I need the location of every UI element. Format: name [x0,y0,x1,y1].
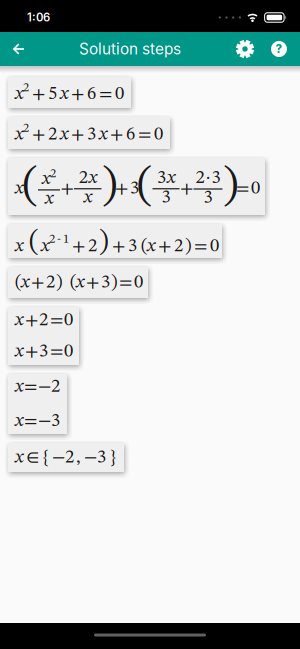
staticText: x2 [42,168,56,188]
staticText: + [180,179,193,198]
staticText: x [84,188,92,207]
button[interactable]: x2 + 5 x + 6 = 0 [8,77,131,108]
staticText: x = −3 [15,412,60,430]
staticText: x2 + 5 x + 6 = 0 [15,82,124,103]
staticText: 1:06 [27,11,50,24]
staticText: ) [223,164,238,209]
button[interactable]: Help [271,41,300,57]
staticText: x + 2 = 0 [15,311,73,329]
staticText: Solution steps [79,40,181,58]
button[interactable]: x ∈ { −2 , −3 } [8,443,124,472]
button[interactable]: Back [0,43,34,55]
button[interactable]: x [8,158,265,215]
staticText: ( [22,164,37,209]
button[interactable]: x = −2 [8,374,67,434]
button[interactable]: x2 + 2 x + 3 x + 6 = 0 [8,117,170,149]
staticText: ) [102,164,117,209]
button[interactable]: x + 2 = 0 [8,307,79,365]
staticText: = 0 [236,179,260,198]
staticText: ( [137,164,152,209]
staticText: x [45,189,53,208]
button[interactable]: x ( x2 - 1 + 2 ) + 3 (x + 2 ) = 0​ [8,224,222,258]
staticText: 3 [161,188,170,207]
staticText: x ( x2 - 1 + 2 ) + 3 (x + 2 ) = 0​ [15,229,219,256]
button[interactable]: (x + 2 ) (x + 3 ) = 0 [8,267,148,298]
staticText: (x + 2 ) (x + 3 ) = 0 [15,273,143,292]
staticText: 2 · 3 [195,169,220,187]
button[interactable]: Settings [236,40,271,58]
staticText: x [15,179,23,198]
staticText: x = −2 [15,378,60,396]
staticText: x ∈ { −2 , −3 } [15,448,116,467]
staticText: x + 3 = 0 [15,342,73,361]
staticText: 3 [203,189,212,207]
staticText: ? [275,42,282,56]
staticText: + 3 [115,179,139,198]
staticText: 2 x [79,169,97,187]
staticText: 3 x [157,169,175,187]
staticText: + [60,179,73,198]
staticText: x2 + 2 x + 3 x + 6 = 0 [15,122,163,144]
